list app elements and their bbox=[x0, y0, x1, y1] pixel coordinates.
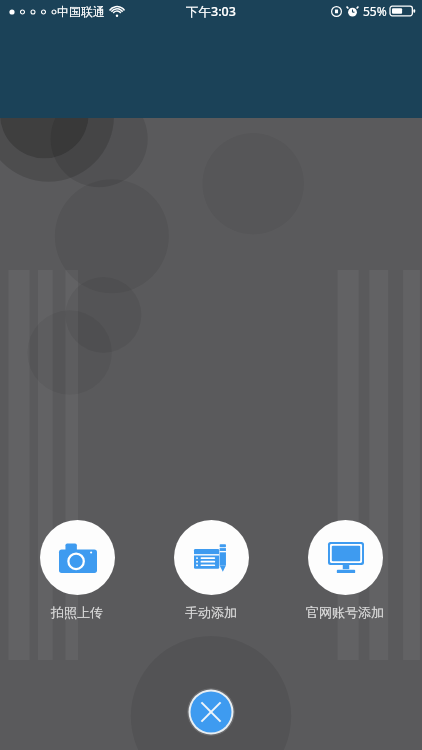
staticText: 下午3:03 bbox=[186, 3, 236, 20]
button[interactable]: 官网账号添加 bbox=[292, 518, 398, 622]
button[interactable]: 拍照上传 bbox=[24, 518, 130, 622]
staticText: 拍照上传 bbox=[51, 604, 103, 620]
staticText: 手动添加 bbox=[185, 604, 237, 620]
button[interactable]: 手动添加 bbox=[158, 518, 264, 622]
staticText: 中国联通 bbox=[57, 4, 105, 19]
staticText: 官网账号添加 bbox=[306, 604, 384, 620]
staticText: 55% bbox=[363, 3, 387, 19]
button[interactable]: Close bbox=[187, 688, 235, 736]
